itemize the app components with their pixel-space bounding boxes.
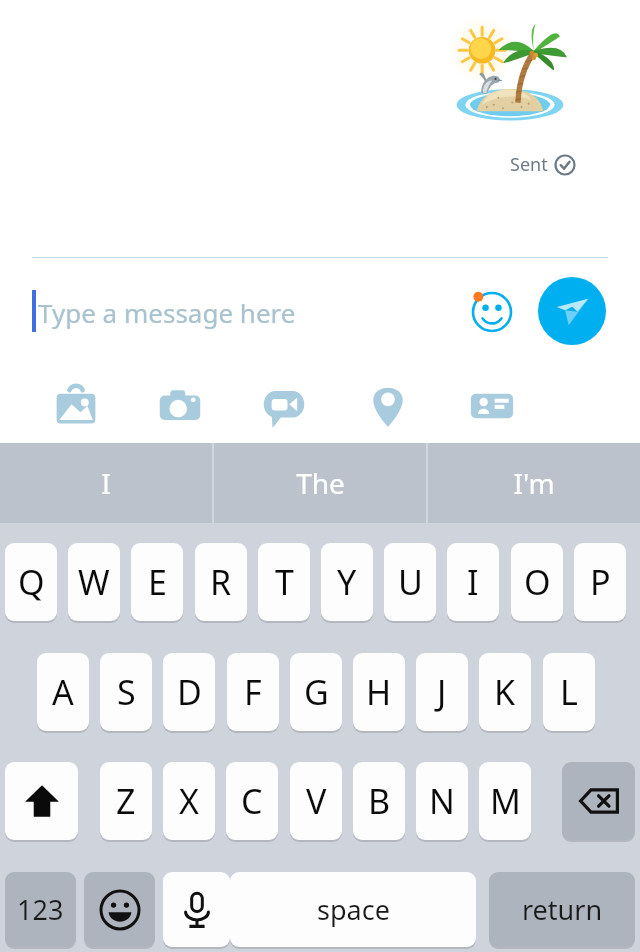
staticText: Y (337, 559, 357, 605)
staticText: B (368, 778, 391, 824)
button[interactable]: H (353, 653, 405, 731)
button[interactable]: I'm (428, 443, 640, 523)
staticText: V (306, 778, 327, 824)
button[interactable]: Y (321, 543, 373, 621)
staticText: return (522, 891, 603, 928)
button[interactable]: S (100, 653, 152, 731)
staticText: The (296, 464, 345, 502)
staticText: Q (18, 559, 45, 605)
button[interactable]: F (227, 653, 279, 731)
button[interactable]: The (214, 443, 426, 523)
button[interactable]: R (195, 543, 247, 621)
button[interactable]: W (68, 543, 120, 621)
staticText: P (590, 559, 611, 605)
staticText: A (52, 669, 74, 715)
button[interactable]: K (479, 653, 531, 731)
staticText: C (241, 778, 263, 824)
button[interactable]: N (416, 762, 468, 840)
staticText: S (117, 669, 136, 715)
button[interactable]: Q (5, 543, 57, 621)
button[interactable]: Z (100, 762, 152, 840)
button[interactable]: X (163, 762, 215, 840)
staticText: I'm (513, 464, 555, 502)
staticText: H (366, 669, 392, 715)
button[interactable]: Video message (256, 378, 312, 434)
button[interactable]: space (230, 872, 476, 947)
staticText: X (179, 778, 199, 824)
button[interactable]: Numbers (5, 872, 76, 947)
button[interactable]: return (489, 872, 635, 947)
staticText: Z (116, 778, 136, 824)
staticText: Type a message here (38, 295, 296, 330)
button[interactable]: T (258, 543, 310, 621)
staticText: D (177, 669, 202, 715)
button[interactable]: M (479, 762, 531, 840)
button[interactable]: I (447, 543, 499, 621)
staticText: E (148, 559, 167, 605)
button[interactable]: Location (360, 378, 416, 434)
button[interactable]: P (574, 543, 626, 621)
button[interactable]: D (163, 653, 215, 731)
staticText: I (101, 464, 111, 502)
button[interactable]: Backspace (562, 762, 635, 840)
staticText: L (560, 669, 578, 715)
staticText: R (210, 559, 232, 605)
button[interactable]: A (37, 653, 89, 731)
button[interactable]: Type a message here (38, 288, 458, 336)
button[interactable]: Emoticons (464, 284, 520, 340)
staticText: space (317, 891, 390, 928)
staticText: M (490, 778, 521, 824)
staticText: 123 (17, 891, 64, 928)
button[interactable]: Shift (5, 762, 78, 840)
button[interactable]: G (290, 653, 342, 731)
button[interactable]: Gallery (48, 378, 104, 434)
staticText: J (437, 669, 447, 715)
staticText: F (244, 669, 262, 715)
button[interactable]: Emoji keyboard (84, 872, 155, 947)
staticText: T (275, 559, 294, 605)
button[interactable]: B (353, 762, 405, 840)
button[interactable]: U (384, 543, 436, 621)
button[interactable]: J (416, 653, 468, 731)
staticText: K (494, 669, 516, 715)
button[interactable]: O (511, 543, 563, 621)
staticText: U (398, 559, 423, 605)
button[interactable]: Contact (464, 378, 520, 434)
button[interactable]: V (290, 762, 342, 840)
staticText: I (467, 559, 479, 605)
button[interactable]: Camera (152, 378, 208, 434)
button[interactable]: I (0, 443, 212, 523)
staticText: N (429, 778, 455, 824)
staticText: W (78, 559, 110, 605)
staticText: O (524, 559, 551, 605)
staticText: Sent (510, 152, 548, 177)
button[interactable]: C (226, 762, 278, 840)
button[interactable]: L (543, 653, 595, 731)
button[interactable]: Send (538, 277, 606, 345)
button[interactable]: Voice input (163, 872, 230, 947)
staticText: G (304, 669, 329, 715)
button[interactable]: E (131, 543, 183, 621)
